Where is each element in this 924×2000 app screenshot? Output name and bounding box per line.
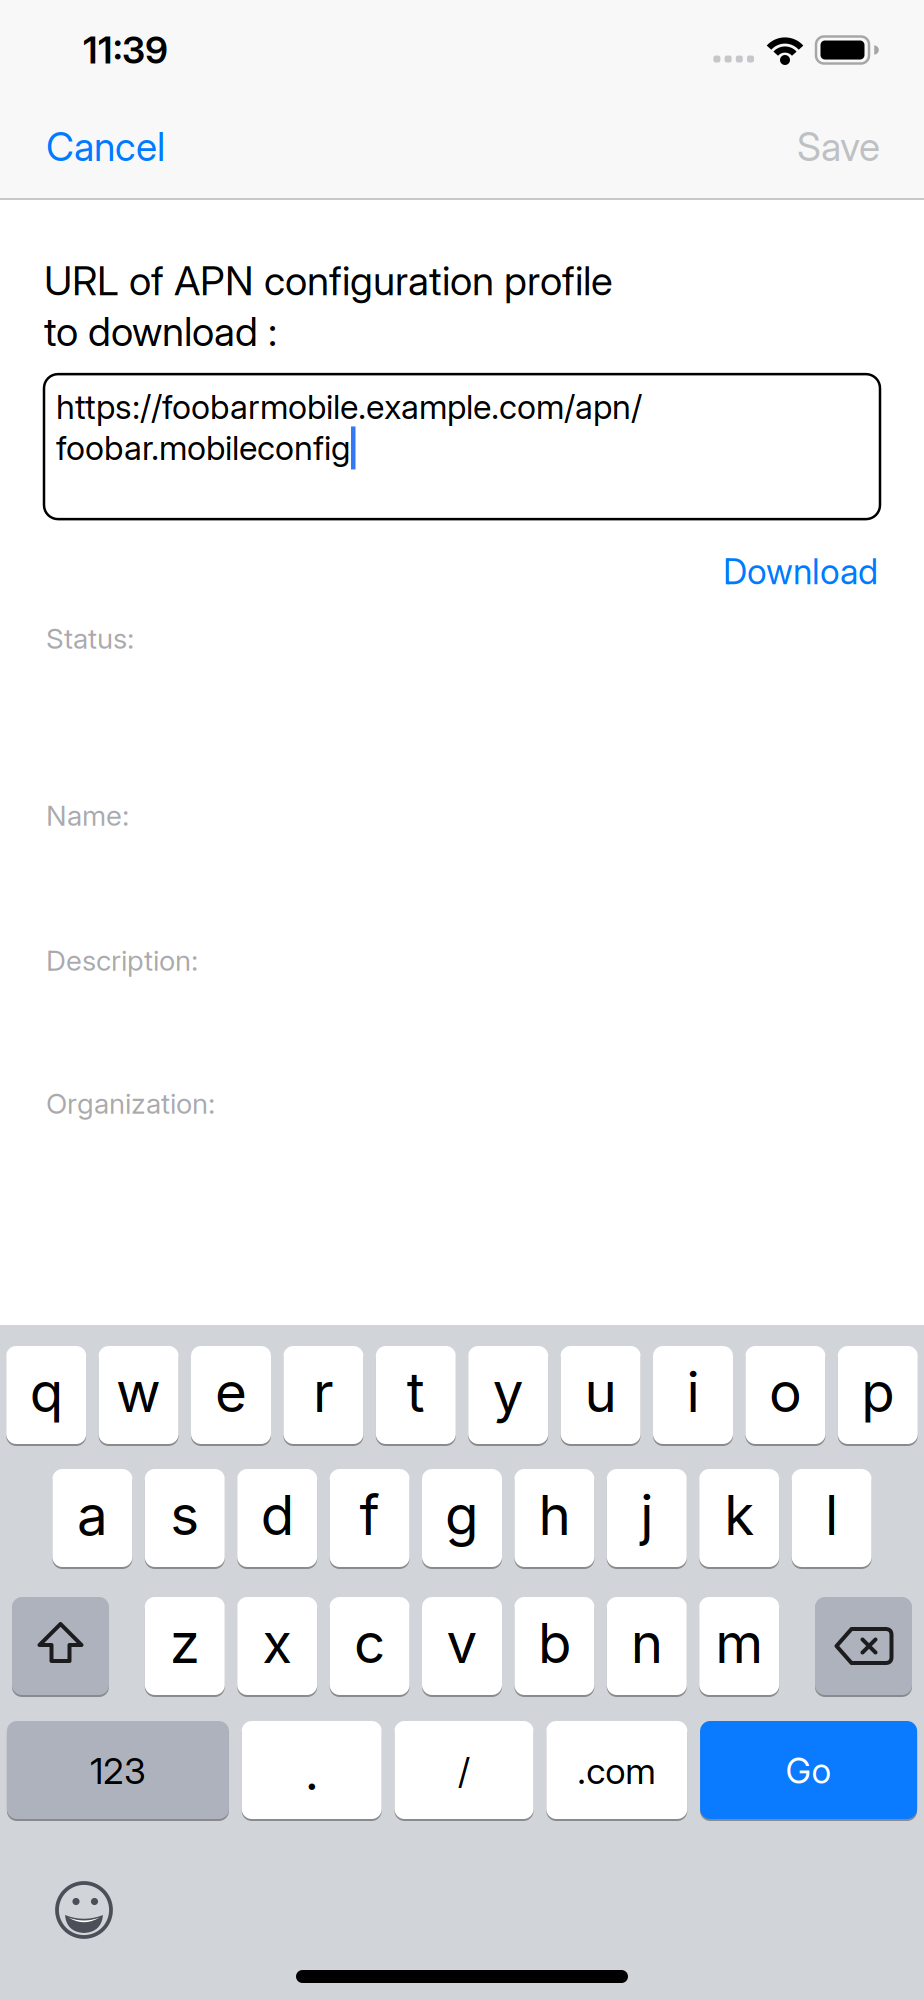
button[interactable]: h bbox=[514, 1469, 594, 1569]
staticText: n bbox=[631, 1611, 663, 1675]
staticText: Go bbox=[786, 1751, 832, 1791]
staticText: 123 bbox=[90, 1750, 146, 1792]
button[interactable]: x bbox=[237, 1597, 317, 1697]
button[interactable]: q bbox=[6, 1346, 86, 1446]
staticText: a bbox=[77, 1483, 108, 1547]
button[interactable]: w bbox=[99, 1346, 179, 1446]
button[interactable]: d bbox=[237, 1469, 317, 1569]
button[interactable]: m bbox=[699, 1597, 779, 1697]
button[interactable]: c bbox=[330, 1597, 410, 1697]
button[interactable]: e bbox=[191, 1346, 271, 1446]
staticText: m bbox=[715, 1611, 763, 1675]
staticText: v bbox=[446, 1611, 477, 1675]
staticText: Download bbox=[723, 551, 878, 592]
staticText: w bbox=[116, 1360, 161, 1424]
staticText: q bbox=[30, 1360, 63, 1424]
button[interactable]: i bbox=[653, 1346, 733, 1446]
button[interactable]: / bbox=[394, 1721, 533, 1821]
button[interactable]: f bbox=[330, 1469, 410, 1569]
button[interactable]: .com bbox=[546, 1721, 687, 1821]
staticText: x bbox=[262, 1611, 292, 1675]
button[interactable]: b bbox=[514, 1597, 594, 1697]
staticText: / bbox=[458, 1750, 470, 1792]
button[interactable]: l bbox=[792, 1469, 872, 1569]
staticText: r bbox=[313, 1360, 334, 1424]
button[interactable]: Emoji bbox=[55, 1881, 115, 1941]
button[interactable]: a bbox=[52, 1469, 132, 1569]
staticText: p bbox=[861, 1360, 894, 1424]
button[interactable]: Cancel bbox=[46, 124, 165, 170]
staticText: d bbox=[261, 1483, 294, 1547]
staticText: s bbox=[170, 1483, 199, 1547]
staticText: c bbox=[354, 1611, 385, 1675]
button[interactable]: t bbox=[376, 1346, 456, 1446]
button[interactable]: j bbox=[607, 1469, 687, 1569]
staticText: j bbox=[640, 1483, 653, 1547]
staticText: Status: bbox=[46, 622, 134, 655]
staticText: Cancel bbox=[46, 124, 165, 170]
button[interactable]: Download bbox=[723, 551, 878, 592]
staticText: g bbox=[445, 1483, 479, 1547]
staticText: Name: bbox=[46, 799, 129, 832]
staticText: t bbox=[407, 1360, 425, 1424]
staticText: URL of APN configuration profile to down… bbox=[44, 257, 613, 355]
button[interactable]: Go bbox=[700, 1721, 917, 1821]
button[interactable]: y bbox=[468, 1346, 548, 1446]
staticText: Organization: bbox=[46, 1087, 215, 1120]
button[interactable]: . bbox=[242, 1721, 382, 1821]
button[interactable]: z bbox=[145, 1597, 225, 1697]
staticText: u bbox=[585, 1360, 617, 1424]
staticText: e bbox=[215, 1360, 247, 1424]
button[interactable]: n bbox=[607, 1597, 687, 1697]
button[interactable]: r bbox=[283, 1346, 363, 1446]
button[interactable]: s bbox=[145, 1469, 225, 1569]
button[interactable]: g bbox=[422, 1469, 502, 1569]
staticText: Save bbox=[797, 124, 880, 170]
staticText: y bbox=[493, 1360, 524, 1424]
button[interactable]: k bbox=[699, 1469, 779, 1569]
staticText: . bbox=[305, 1743, 319, 1801]
button[interactable]: p bbox=[838, 1346, 918, 1446]
staticText: b bbox=[538, 1611, 571, 1675]
staticText: foobar.mobileconfig bbox=[56, 428, 350, 468]
button[interactable]: u bbox=[561, 1346, 641, 1446]
button[interactable]: Save bbox=[797, 124, 880, 170]
staticText: 11:39 bbox=[83, 28, 168, 72]
staticText: https://foobarmobile.example.com/apn/ bbox=[56, 387, 642, 426]
staticText: h bbox=[538, 1483, 570, 1547]
staticText: Description: bbox=[46, 944, 198, 977]
staticText: f bbox=[360, 1483, 380, 1547]
staticText: l bbox=[825, 1483, 838, 1547]
button[interactable]: v bbox=[422, 1597, 502, 1697]
button[interactable]: 123 bbox=[7, 1721, 229, 1821]
button[interactable]: Delete bbox=[815, 1597, 912, 1697]
staticText: .com bbox=[577, 1750, 656, 1792]
button[interactable]: o bbox=[745, 1346, 825, 1446]
staticText: i bbox=[686, 1360, 699, 1424]
staticText: z bbox=[170, 1611, 200, 1675]
staticText: o bbox=[769, 1360, 802, 1424]
staticText: k bbox=[724, 1483, 754, 1547]
button[interactable]: Shift bbox=[12, 1597, 109, 1697]
